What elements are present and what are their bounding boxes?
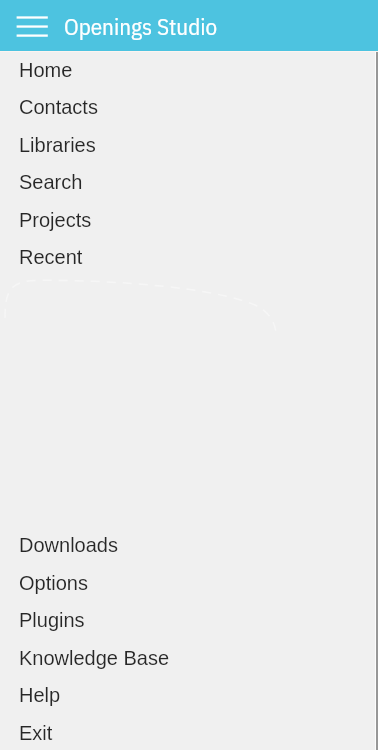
button[interactable]: Plugins bbox=[0, 601, 378, 639]
staticText: Help bbox=[19, 684, 61, 706]
staticText: Recent bbox=[19, 246, 83, 268]
staticText: Search bbox=[19, 171, 83, 193]
staticText: Home bbox=[19, 59, 73, 81]
staticText: Plugins bbox=[19, 609, 85, 631]
staticText: Downloads bbox=[19, 534, 118, 556]
button[interactable]: Knowledge Base bbox=[0, 639, 378, 677]
staticText: Exit bbox=[19, 722, 53, 744]
button[interactable]: Options bbox=[0, 564, 378, 602]
button[interactable]: Contacts bbox=[0, 88, 378, 126]
staticText: Options bbox=[19, 572, 88, 594]
button[interactable]: Help bbox=[0, 676, 378, 714]
button[interactable]: Open navigation menu bbox=[0, 0, 64, 51]
staticText: Libraries bbox=[19, 134, 96, 156]
button[interactable]: Recent bbox=[0, 238, 378, 276]
button[interactable]: Exit bbox=[0, 714, 378, 750]
staticText: Openings Studio bbox=[64, 11, 218, 41]
button[interactable]: Search bbox=[0, 163, 378, 201]
staticText: Contacts bbox=[19, 96, 98, 118]
button[interactable]: Projects bbox=[0, 201, 378, 239]
button[interactable]: Libraries bbox=[0, 126, 378, 164]
button[interactable]: Home bbox=[0, 51, 378, 89]
staticText: Knowledge Base bbox=[19, 647, 170, 669]
staticText: Projects bbox=[19, 209, 92, 231]
button[interactable]: Downloads bbox=[0, 526, 378, 564]
